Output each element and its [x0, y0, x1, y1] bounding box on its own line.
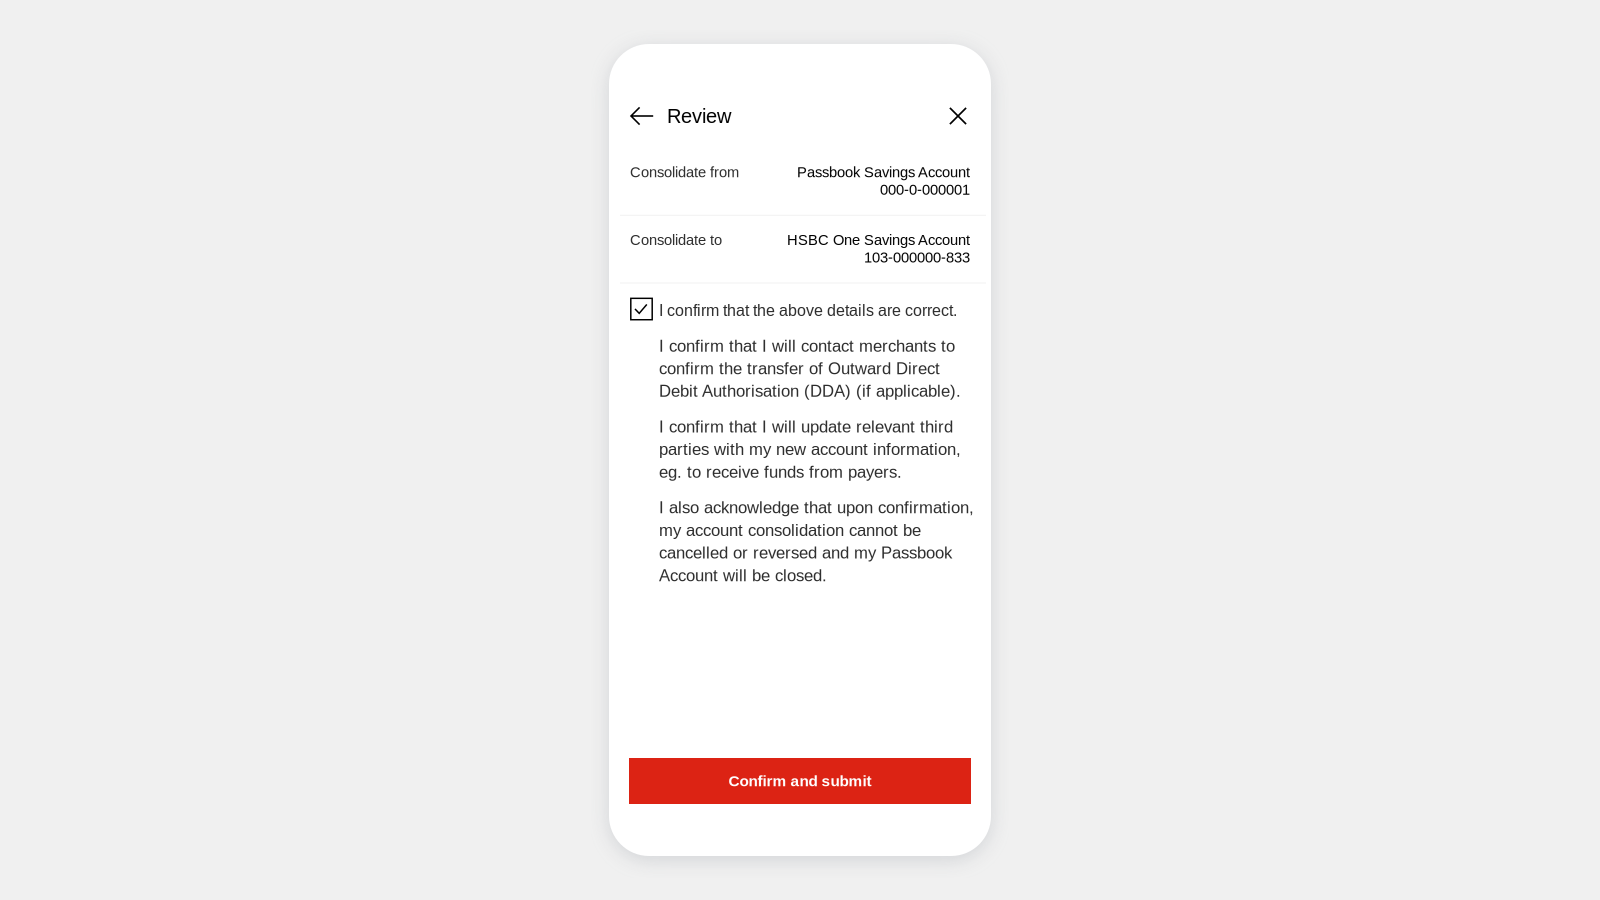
staticText: I also acknowledge that upon confirmatio…	[659, 498, 974, 585]
staticText: I confirm that I will contact merchants …	[659, 336, 961, 400]
staticText: Review	[667, 105, 731, 127]
staticText: I confirm that I will update relevant th…	[659, 417, 961, 481]
button[interactable]: Review	[667, 99, 731, 133]
button[interactable]: Close	[934, 101, 991, 131]
button[interactable]: I confirm that the above details are cor…	[609, 297, 991, 320]
staticText: 000-0-000001	[880, 181, 970, 198]
staticText: Consolidate to	[630, 232, 722, 248]
staticText: Confirm and submit	[728, 772, 871, 789]
button[interactable]: Confirm and submit	[629, 758, 971, 804]
staticText: I confirm that the above details are cor…	[659, 301, 957, 319]
staticText: Passbook Savings Account	[797, 164, 970, 180]
staticText: Consolidate from	[630, 164, 739, 180]
staticText: HSBC One Savings Account	[787, 232, 970, 248]
button[interactable]: Back	[609, 99, 667, 133]
staticText: 103-000000-833	[864, 249, 970, 266]
